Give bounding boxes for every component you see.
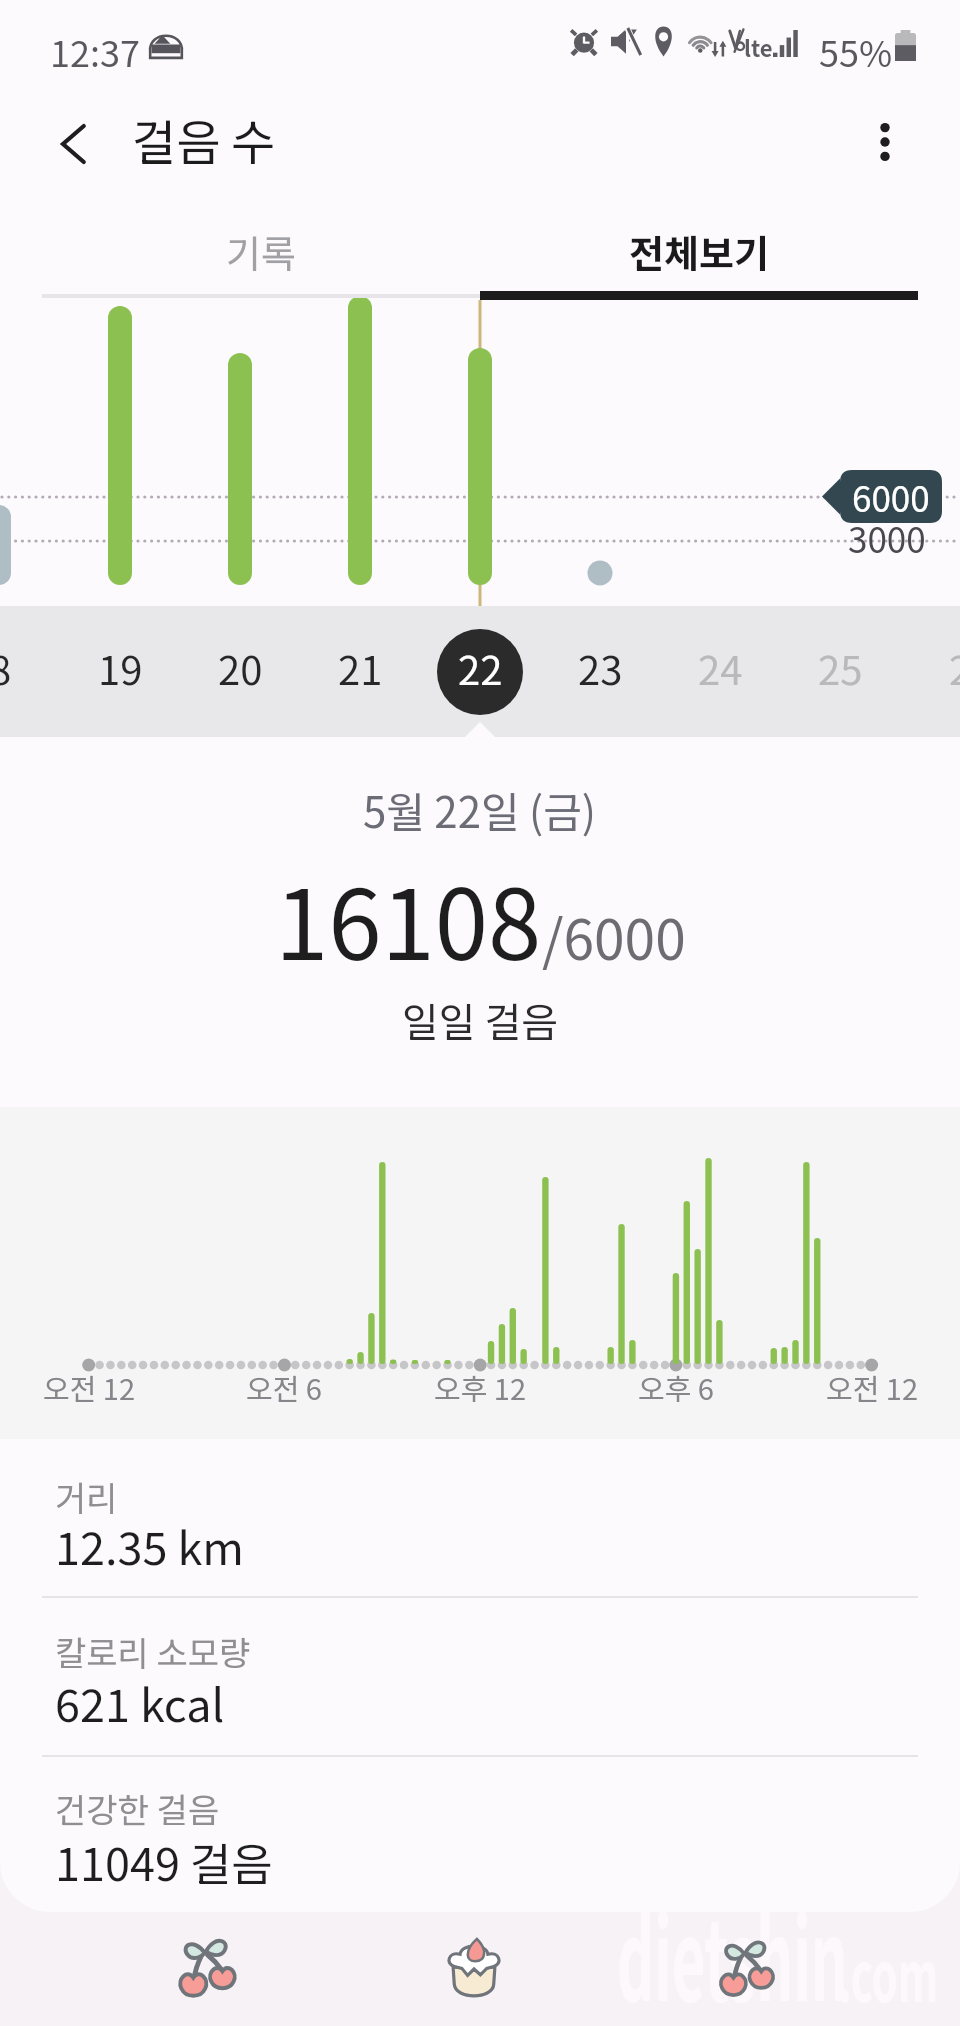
staticText: 전체보기: [629, 224, 769, 279]
staticText: 12:37: [50, 25, 140, 77]
button[interactable]: Meals: [414, 1912, 534, 2026]
staticText: 16108: [275, 849, 542, 988]
button[interactable]: More options: [854, 111, 916, 173]
button[interactable]: 19: [80, 638, 160, 698]
button[interactable]: 2: [920, 638, 960, 698]
button[interactable]: 22: [440, 638, 520, 698]
staticText: 걸음 수: [132, 104, 276, 174]
button[interactable]: 8: [0, 638, 40, 698]
staticText: 20: [218, 639, 263, 697]
staticText: 12.35 km: [55, 1513, 245, 1578]
staticText: 3000: [848, 512, 926, 563]
button[interactable]: 21: [320, 638, 400, 698]
staticText: lte: [744, 31, 773, 61]
staticText: 22: [458, 639, 503, 697]
staticText: 11049 걸음: [55, 1829, 273, 1894]
staticText: 오후 12: [434, 1366, 527, 1408]
button[interactable]: 전체보기: [480, 200, 918, 300]
staticText: 오전 12: [43, 1366, 136, 1408]
staticText: 24: [698, 639, 743, 697]
button[interactable]: 23: [560, 638, 640, 698]
staticText: 거리: [55, 1472, 118, 1521]
staticText: 오전 6: [246, 1366, 322, 1408]
staticText: 오전 12: [826, 1366, 919, 1408]
button[interactable]: Back: [41, 113, 103, 175]
button[interactable]: 24: [680, 638, 760, 698]
staticText: 칼로리 소모량: [55, 1627, 251, 1676]
button[interactable]: Home: [147, 1909, 267, 2023]
staticText: 8: [0, 639, 12, 697]
staticText: 55%: [819, 25, 893, 77]
button[interactable]: 칼로리 소모량: [0, 1598, 960, 1753]
button[interactable]: Profile: [687, 1910, 807, 2024]
staticText: 21: [338, 639, 383, 697]
staticText: 23: [578, 639, 623, 697]
button[interactable]: 기록: [42, 200, 480, 300]
staticText: 오후 6: [638, 1366, 714, 1408]
button[interactable]: 25: [800, 638, 880, 698]
staticText: 6000: [852, 471, 930, 522]
staticText: 25: [818, 639, 863, 697]
staticText: /6000: [542, 896, 686, 976]
staticText: 5월 22일 (금): [363, 779, 597, 840]
staticText: 621 kcal: [55, 1670, 225, 1735]
staticText: 건강한 걸음: [55, 1784, 220, 1833]
button[interactable]: 거리: [0, 1443, 960, 1598]
staticText: 2: [949, 639, 960, 697]
button[interactable]: 건강한 걸음: [0, 1755, 960, 1910]
staticText: dietshin: [617, 1872, 848, 2026]
staticText: 19: [98, 639, 143, 697]
staticText: 기록: [226, 224, 296, 279]
staticText: 일일 걸음: [402, 991, 559, 1049]
button[interactable]: 20: [200, 638, 280, 698]
